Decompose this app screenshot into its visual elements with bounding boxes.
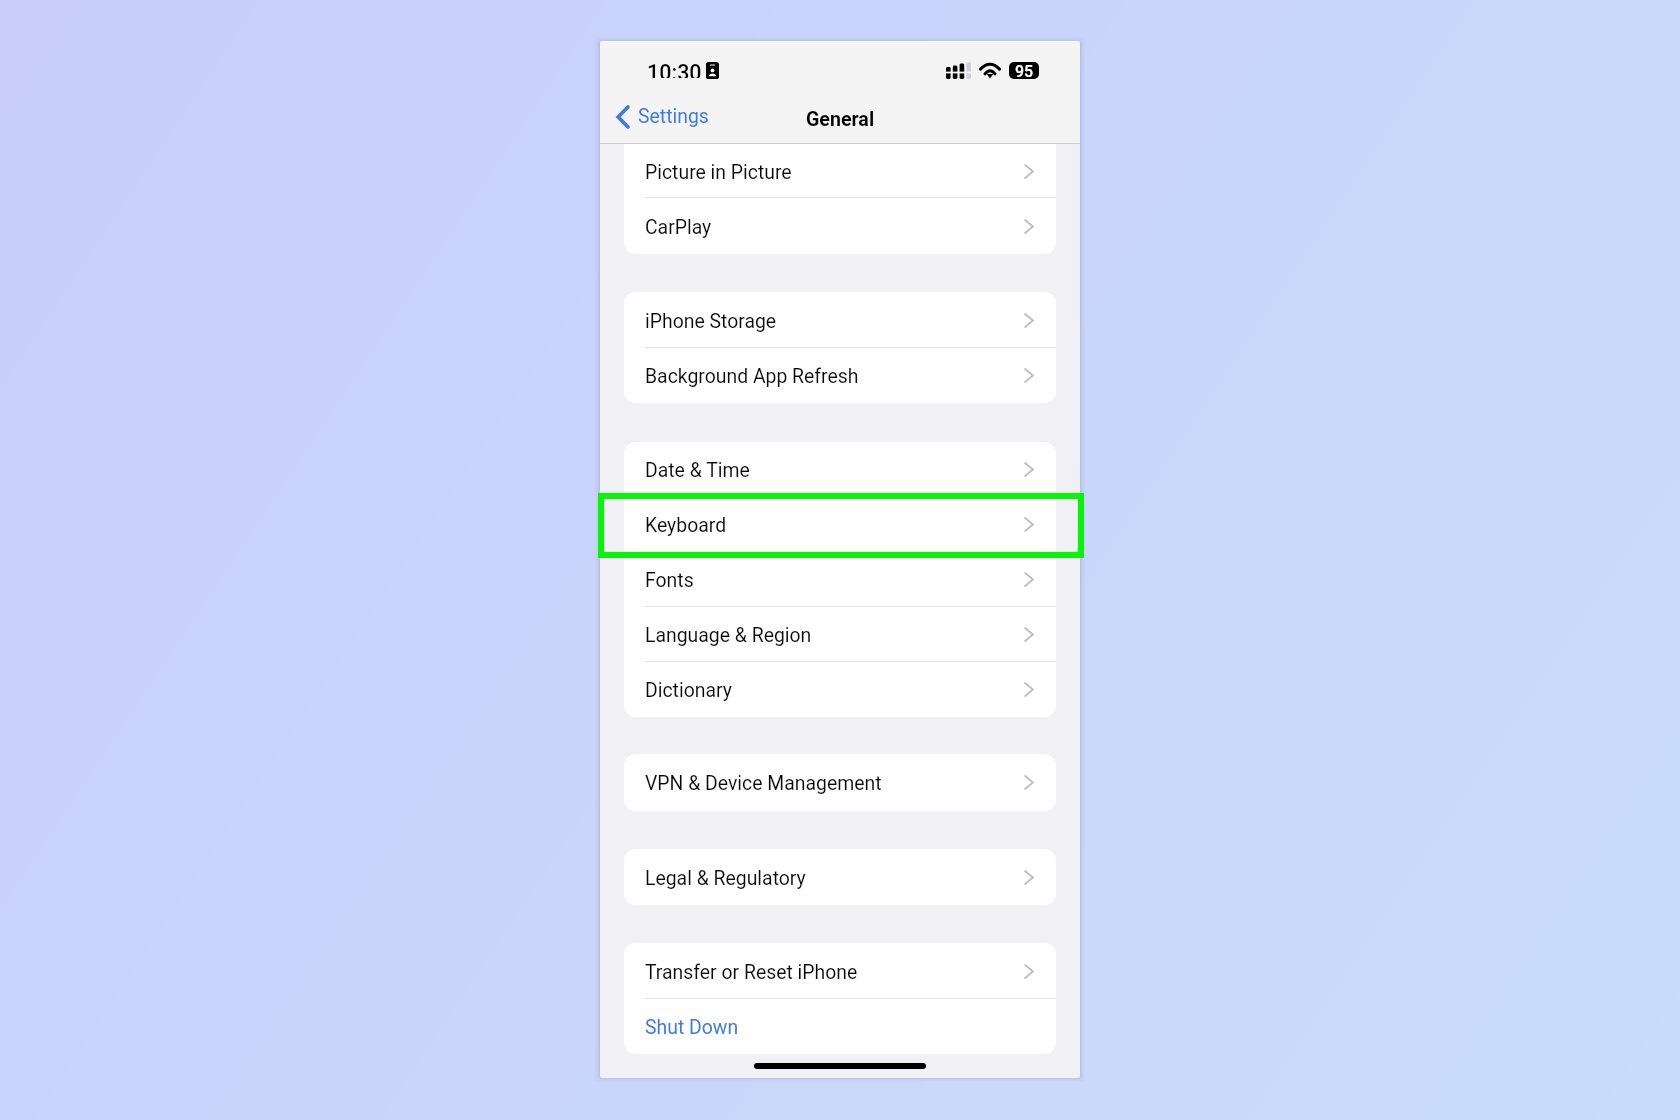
staticText: Language & Region (645, 624, 812, 647)
staticText: Shut Down (645, 1016, 739, 1039)
staticText: CarPlay (645, 216, 712, 239)
button[interactable]: Background App Refresh (624, 348, 1056, 403)
staticText: 95 (1015, 62, 1034, 79)
button[interactable]: Back to Settings (610, 101, 715, 133)
button[interactable]: iPhone Storage (624, 292, 1056, 348)
button[interactable]: Keyboard (624, 497, 1056, 552)
staticText: Dictionary (645, 679, 732, 702)
staticText: Keyboard (645, 514, 727, 537)
button[interactable]: Language & Region (624, 607, 1056, 662)
staticText: iPhone Storage (645, 310, 777, 333)
staticText: General (806, 108, 875, 131)
button[interactable]: Date & Time (624, 442, 1056, 497)
staticText: Fonts (645, 569, 694, 592)
staticText: Picture in Picture (645, 161, 792, 184)
other: Personal Hotspot / ID badge (706, 62, 719, 79)
button[interactable]: VPN & Device Management (624, 754, 1056, 811)
staticText: Settings (638, 105, 709, 128)
button[interactable]: Dictionary (624, 662, 1056, 717)
button[interactable]: Picture in Picture (624, 144, 1056, 198)
other: Cellular signal (946, 62, 971, 79)
other: Wi-Fi (979, 62, 1001, 79)
staticText: Transfer or Reset iPhone (645, 961, 858, 984)
button[interactable]: Transfer or Reset iPhone (624, 943, 1056, 999)
button[interactable]: Fonts (624, 552, 1056, 607)
staticText: VPN & Device Management (645, 772, 882, 795)
button[interactable]: Shut Down (624, 999, 1056, 1054)
staticText: Legal & Regulatory (645, 867, 806, 890)
staticText: Background App Refresh (645, 365, 859, 388)
staticText: 10:30 (647, 60, 702, 78)
other: Battery 95 percent (1009, 62, 1039, 79)
staticText: Date & Time (645, 459, 750, 482)
button[interactable]: CarPlay (624, 198, 1056, 254)
button[interactable]: Legal & Regulatory (624, 849, 1056, 905)
